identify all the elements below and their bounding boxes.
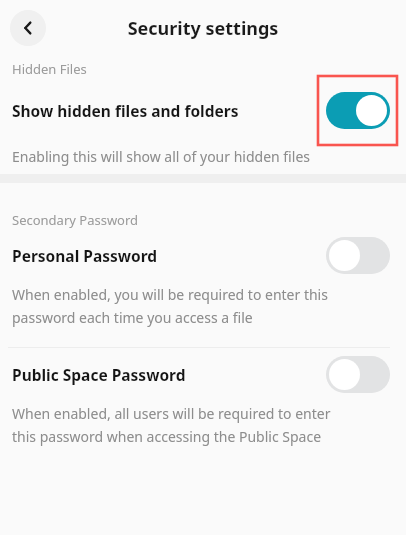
button[interactable]: Public Space Password toggle, off [326, 356, 390, 393]
staticText: Hidden Files [12, 60, 87, 78]
button[interactable]: Show hidden files and folders toggle, on [326, 92, 390, 129]
button[interactable]: Public Space Password [0, 348, 406, 400]
staticText: Show hidden files and folders [12, 100, 239, 121]
staticText: Personal Password [12, 245, 158, 266]
staticText: Enabling this will show all of your hidd… [12, 147, 311, 166]
button[interactable]: Personal Password [0, 229, 406, 281]
staticText: Security settings [0, 16, 406, 41]
staticText: When enabled, all users will be required… [12, 404, 331, 446]
button[interactable]: Personal Password toggle, off [326, 237, 390, 274]
staticText: Secondary Password [12, 211, 139, 229]
button[interactable]: Show hidden files and folders [0, 82, 406, 138]
staticText: Public Space Password [12, 364, 186, 385]
button[interactable]: Back [10, 10, 46, 46]
staticText: When enabled, you will be required to en… [12, 285, 328, 327]
